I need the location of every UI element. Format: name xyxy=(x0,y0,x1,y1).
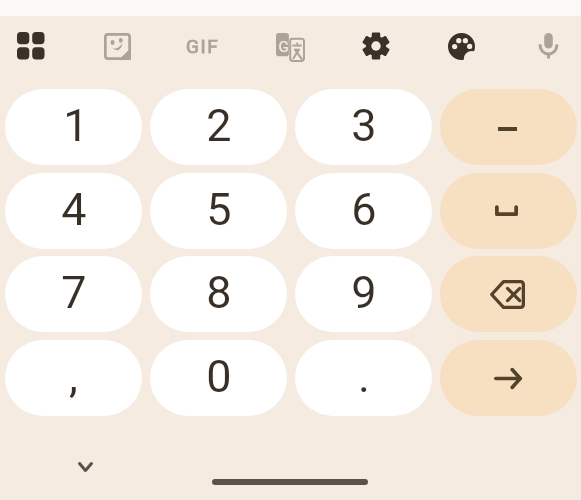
button[interactable]: 8 xyxy=(150,256,287,332)
button[interactable]: Settings xyxy=(354,24,398,68)
button[interactable]: 5 xyxy=(150,173,287,249)
staticText: 4 xyxy=(61,183,87,236)
staticText: 9 xyxy=(351,266,377,319)
button[interactable]: Stickers xyxy=(95,24,139,68)
staticText: 8 xyxy=(206,266,232,319)
staticText: 7 xyxy=(61,266,87,319)
button[interactable]: . xyxy=(295,340,432,416)
staticText: , xyxy=(69,350,78,403)
staticText: 3 xyxy=(351,99,377,152)
button[interactable]: 2 xyxy=(150,89,287,165)
staticText: 2 xyxy=(206,99,232,152)
button[interactable] xyxy=(440,340,577,416)
button[interactable]: Translate xyxy=(268,25,312,69)
button[interactable]: GIF xyxy=(178,24,228,68)
staticText: 5 xyxy=(206,183,232,236)
button[interactable]: 7 xyxy=(5,256,142,332)
button[interactable] xyxy=(440,256,577,332)
staticText: . xyxy=(358,350,370,403)
button[interactable] xyxy=(440,173,577,249)
button[interactable]: , xyxy=(5,340,142,416)
button[interactable]: 6 xyxy=(295,173,432,249)
button[interactable]: Voice input xyxy=(526,24,570,68)
button[interactable]: 9 xyxy=(295,256,432,332)
button[interactable]: 4 xyxy=(5,173,142,249)
button[interactable] xyxy=(440,89,577,165)
staticText: GIF xyxy=(186,35,220,57)
staticText: 1 xyxy=(63,99,89,152)
button[interactable]: Hide keyboard xyxy=(71,448,99,485)
button[interactable]: 0 xyxy=(150,340,287,416)
button[interactable]: Switch keyboard xyxy=(9,24,53,68)
button[interactable]: 3 xyxy=(295,89,432,165)
staticText: G xyxy=(278,38,289,52)
staticText: 0 xyxy=(206,350,232,403)
button[interactable]: 1 xyxy=(5,89,142,165)
button[interactable]: Themes xyxy=(439,24,483,68)
staticText: 6 xyxy=(351,183,377,236)
